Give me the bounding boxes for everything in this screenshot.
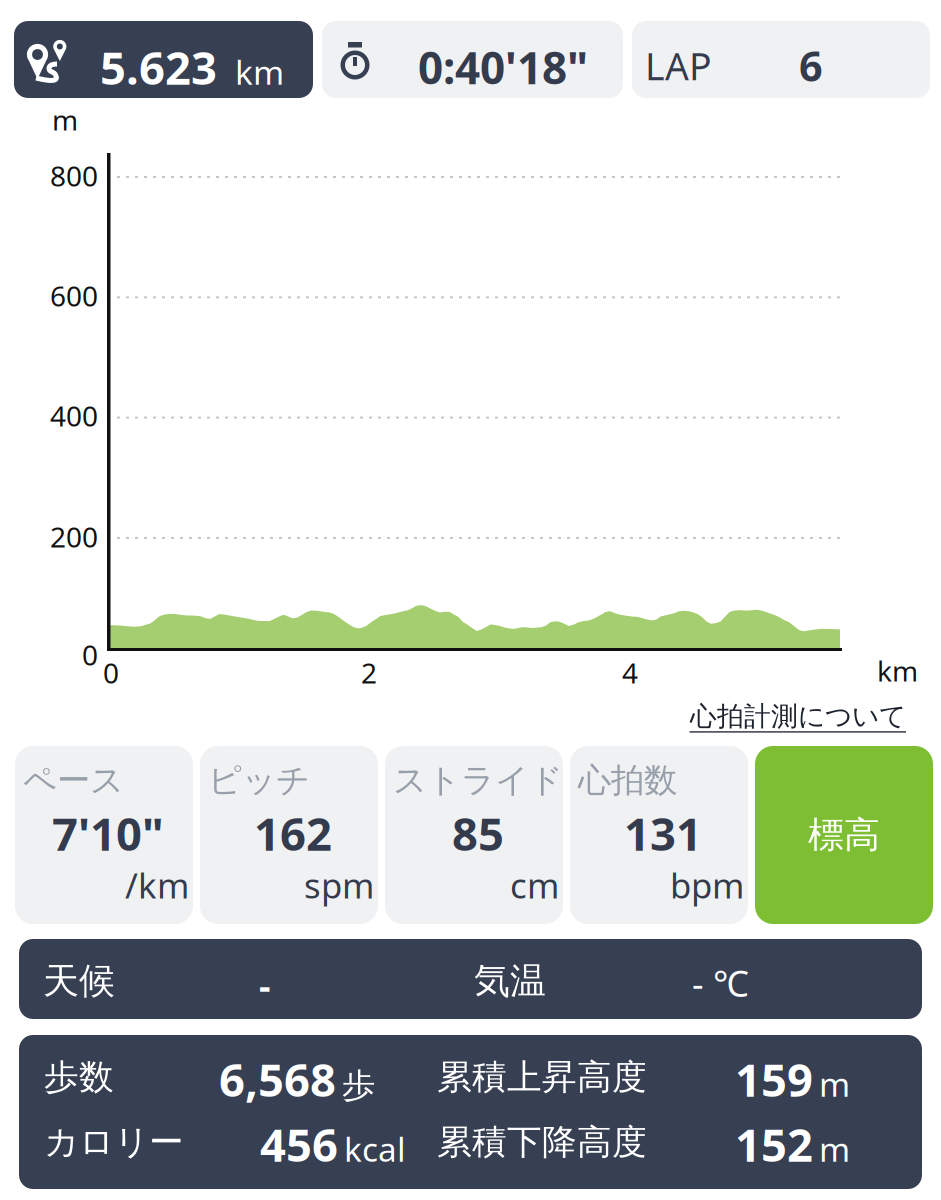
staticText: m xyxy=(819,1127,850,1171)
staticText: 標高 xyxy=(808,813,880,857)
staticText: 2 xyxy=(361,654,377,691)
staticText: 200 xyxy=(50,518,98,555)
staticText: 歩 xyxy=(342,1065,375,1106)
staticText: 400 xyxy=(50,397,98,434)
staticText: 6,568 xyxy=(219,1049,336,1109)
staticText: 4 xyxy=(622,654,638,691)
staticText: 累積上昇高度 xyxy=(437,1056,647,1099)
staticText: m xyxy=(819,1062,850,1106)
staticText: 心拍計測について xyxy=(690,700,906,733)
staticText: 歩数 xyxy=(44,1056,114,1099)
staticText: 131 xyxy=(624,803,702,863)
button[interactable]: 標高 xyxy=(755,746,933,924)
staticText: 159 xyxy=(735,1049,813,1109)
staticText: 0 xyxy=(103,654,119,691)
staticText: LAP xyxy=(645,41,712,91)
staticText: km xyxy=(877,652,918,689)
staticText: 0 xyxy=(82,636,98,673)
staticText: ピッチ xyxy=(208,760,310,801)
staticText: 85 xyxy=(452,803,504,863)
staticText: 800 xyxy=(50,157,98,194)
staticText: 600 xyxy=(50,277,98,314)
staticText: 152 xyxy=(735,1114,813,1174)
staticText: 心拍数 xyxy=(578,760,677,801)
staticText: ペース xyxy=(23,760,124,801)
staticText: spm xyxy=(304,862,374,908)
staticText: km xyxy=(235,50,284,94)
button[interactable]: 0:40'18" xyxy=(322,21,623,98)
button[interactable]: 心拍数 xyxy=(570,746,748,924)
staticText: 気温 xyxy=(474,959,546,1003)
staticText: - xyxy=(259,961,271,1009)
button[interactable]: 5.623 xyxy=(14,21,313,98)
staticText: 7'10" xyxy=(52,803,164,863)
staticText: bpm xyxy=(670,862,744,908)
staticText: cm xyxy=(510,862,559,908)
staticText: 6 xyxy=(799,38,823,93)
button[interactable]: ストライド xyxy=(385,746,563,924)
staticText: /km xyxy=(125,862,189,908)
button[interactable]: ピッチ xyxy=(200,746,378,924)
staticText: m xyxy=(52,101,78,138)
staticText: ストライド xyxy=(393,760,563,801)
button[interactable]: ペース xyxy=(15,746,193,924)
button[interactable]: LAP xyxy=(632,21,930,98)
staticText: 0:40'18" xyxy=(418,38,588,96)
staticText: 456 xyxy=(260,1114,338,1174)
staticText: kcal xyxy=(344,1127,406,1171)
staticText: 天候 xyxy=(43,959,115,1003)
staticText: カロリー xyxy=(44,1121,184,1164)
button[interactable]: 心拍計測について xyxy=(690,700,906,733)
staticText: 累積下降高度 xyxy=(437,1121,647,1164)
staticText: 162 xyxy=(254,803,332,863)
staticText: 5.623 xyxy=(100,37,217,97)
staticText: - ℃ xyxy=(692,959,749,1007)
